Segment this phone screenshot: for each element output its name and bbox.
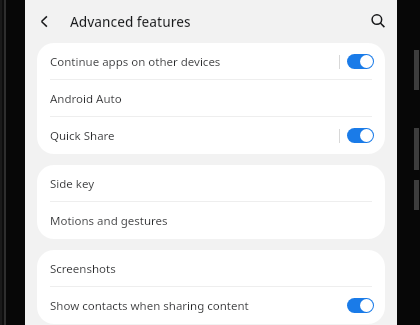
- button[interactable]: Toggle: [347, 298, 374, 313]
- staticText: Quick Share: [50, 128, 339, 144]
- staticText: Screenshots: [50, 261, 374, 277]
- staticText: Motions and gestures: [50, 213, 374, 229]
- staticText: Android Auto: [50, 91, 374, 107]
- staticText: Continue apps on other devices: [50, 54, 339, 70]
- button[interactable]: Show contacts when sharing content: [37, 287, 385, 324]
- button[interactable]: Side key: [37, 165, 385, 202]
- button[interactable]: Toggle: [347, 54, 374, 69]
- button[interactable]: Screenshots: [37, 250, 385, 287]
- button[interactable]: Back: [26, 3, 62, 39]
- button[interactable]: Search: [360, 3, 396, 39]
- staticText: Show contacts when sharing content: [50, 298, 347, 314]
- staticText: Advanced features: [70, 13, 191, 31]
- button[interactable]: Motions and gestures: [37, 202, 385, 239]
- button[interactable]: Continue apps on other devices: [37, 43, 385, 80]
- button[interactable]: Toggle: [347, 128, 374, 143]
- button[interactable]: Android Auto: [37, 80, 385, 117]
- staticText: Side key: [50, 176, 374, 192]
- button[interactable]: Quick Share: [37, 117, 385, 154]
